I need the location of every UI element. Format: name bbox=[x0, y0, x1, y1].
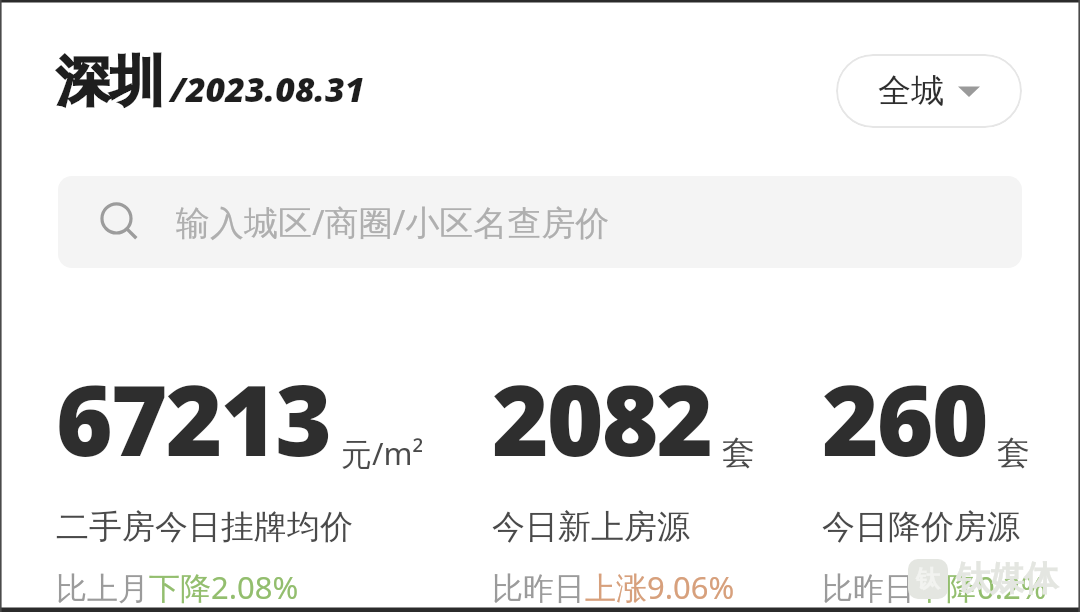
button[interactable]: 全城 bbox=[836, 54, 1022, 128]
staticText: /2023.08.31 bbox=[170, 66, 365, 112]
staticText: 全城 bbox=[878, 70, 944, 112]
staticText: 比昨日上涨9.06% bbox=[492, 566, 735, 608]
staticText: 67213 bbox=[56, 352, 331, 484]
staticText: 比上月下降2.08% bbox=[56, 566, 299, 608]
staticText: 二手房今日挂牌均价 bbox=[56, 506, 353, 548]
button[interactable]: 67213 bbox=[56, 352, 424, 608]
button[interactable]: Search bbox=[58, 176, 1022, 268]
staticText: 钛媒体 bbox=[956, 557, 1058, 600]
staticText: 钛 bbox=[916, 564, 940, 594]
button[interactable]: 260 bbox=[822, 352, 1047, 608]
staticText: 260 bbox=[822, 352, 987, 484]
other: Search bbox=[98, 200, 142, 244]
staticText: 比昨日下降0.2% bbox=[822, 566, 1047, 608]
staticText: 2082 bbox=[492, 352, 712, 484]
staticText: 今日新上房源 bbox=[492, 506, 690, 548]
staticText: 套 bbox=[722, 432, 755, 474]
staticText: 套 bbox=[997, 432, 1030, 474]
staticText: 输入城区/商圈/小区名查房价 bbox=[176, 199, 610, 245]
button[interactable]: 2082 bbox=[492, 352, 755, 608]
staticText: 元/m² bbox=[341, 432, 424, 474]
staticText: 今日降价房源 bbox=[822, 506, 1020, 548]
staticText: 深圳 bbox=[56, 48, 164, 116]
